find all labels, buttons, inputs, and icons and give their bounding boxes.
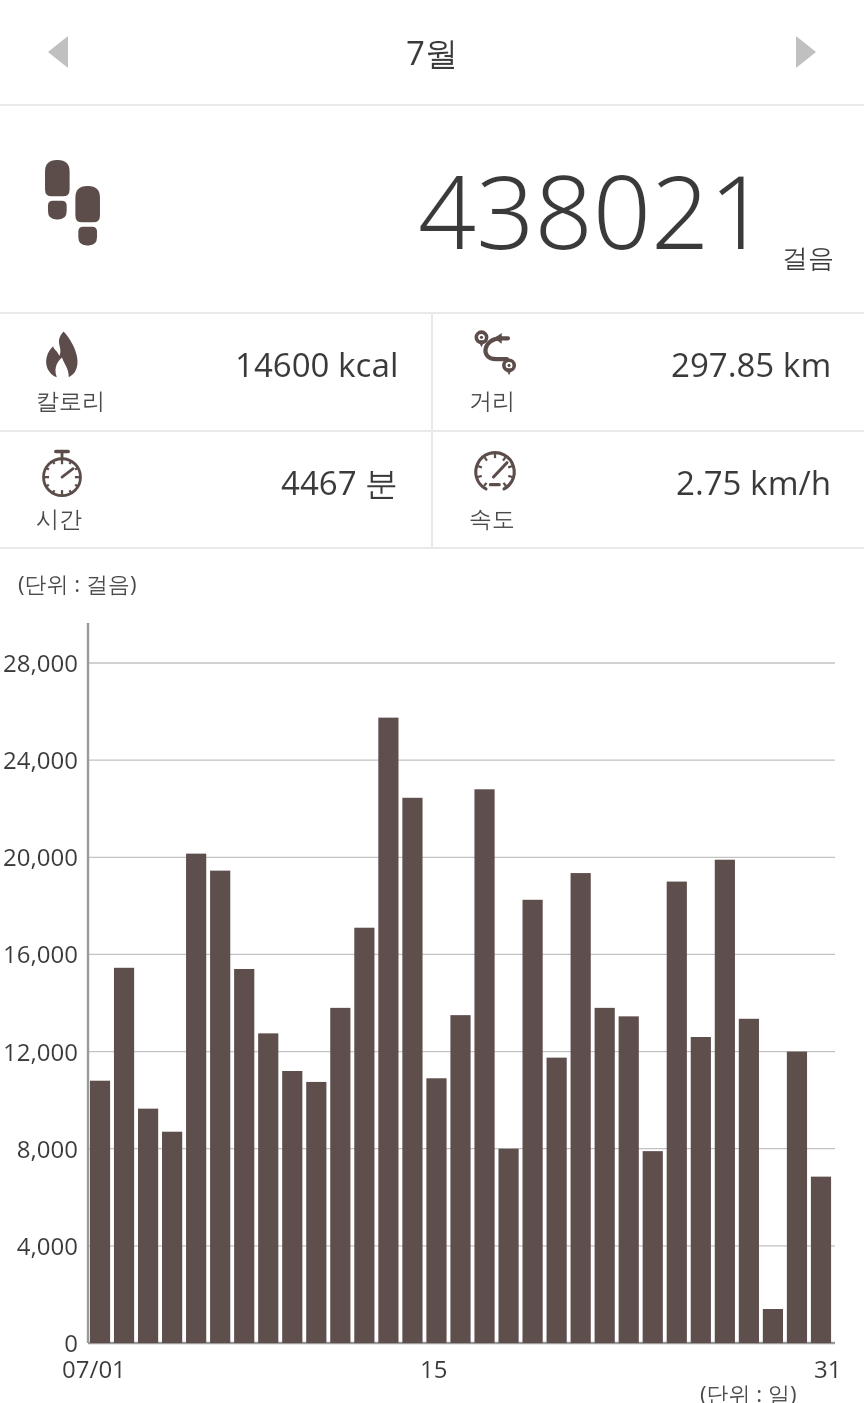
staticText: 24,000 — [2, 743, 78, 776]
staticText: 2.75 km/h — [676, 460, 832, 505]
staticText: 걸음 — [782, 242, 834, 275]
button[interactable]: 거리 — [433, 314, 864, 430]
staticText: 속도 — [469, 505, 515, 534]
staticText: 거리 — [469, 387, 515, 416]
staticText: 시간 — [36, 505, 82, 534]
button[interactable]: 칼로리 — [0, 314, 431, 430]
staticText: (단위 : 걸음) — [18, 568, 137, 598]
staticText: 7월 — [406, 30, 458, 75]
staticText: 12,000 — [2, 1035, 78, 1068]
staticText: 07/01 — [62, 1352, 126, 1385]
staticText: 28,000 — [2, 646, 78, 679]
staticText: 4467 분 — [281, 460, 399, 505]
staticText: 4,000 — [16, 1229, 78, 1262]
button[interactable]: 438021 — [0, 106, 864, 312]
staticText: 칼로리 — [36, 387, 105, 416]
staticText: 15 — [420, 1352, 448, 1385]
staticText: 31 — [814, 1352, 842, 1385]
staticText: 8,000 — [16, 1132, 78, 1165]
staticText: (단위 : 일) — [700, 1378, 797, 1403]
button[interactable]: 속도 — [433, 432, 864, 548]
staticText: 438021 — [418, 140, 768, 279]
button[interactable]: 시간 — [0, 432, 431, 548]
staticText: 14600 kcal — [235, 342, 399, 387]
staticText: 0 — [64, 1326, 78, 1359]
staticText: 16,000 — [2, 937, 78, 970]
button[interactable]: Previous month — [22, 16, 94, 88]
button[interactable]: Next month — [770, 16, 842, 88]
staticText: 297.85 km — [671, 342, 832, 387]
staticText: 20,000 — [2, 840, 78, 873]
